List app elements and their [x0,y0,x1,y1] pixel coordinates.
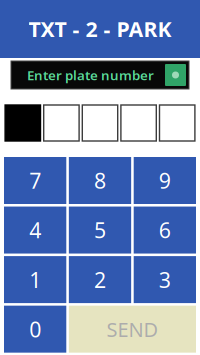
button[interactable]: 2 [69,256,131,303]
staticText: 0 [29,315,41,343]
button[interactable]: 4 [4,207,66,254]
button[interactable]: Plate character 2 [44,105,79,141]
button[interactable]: 0 [4,306,66,353]
staticText: 8 [94,166,106,195]
button[interactable]: SEND [69,306,196,353]
button[interactable]: 6 [134,207,196,254]
staticText: 9 [159,166,171,195]
button[interactable]: 9 [134,157,196,204]
button[interactable]: 1 [4,256,66,303]
staticText: SEND [106,316,158,342]
button[interactable]: 8 [69,157,131,204]
staticText: 2 [94,265,106,294]
staticText: 4 [29,216,41,244]
staticText: 5 [94,216,106,244]
staticText: 3 [159,265,171,294]
button[interactable]: Plate character 5 [159,105,195,141]
button[interactable]: 7 [4,157,66,204]
staticText: TXT - 2 - PARK [28,15,171,43]
button[interactable]: Plate character 4 [121,105,156,141]
button[interactable]: 5 [69,207,131,254]
staticText: 6 [159,216,171,244]
staticText: 7 [29,166,41,195]
staticText: Enter plate number [27,66,154,84]
staticText: 1 [29,265,41,294]
button[interactable]: 3 [134,256,196,303]
button[interactable]: Plate character 3 [82,105,118,141]
